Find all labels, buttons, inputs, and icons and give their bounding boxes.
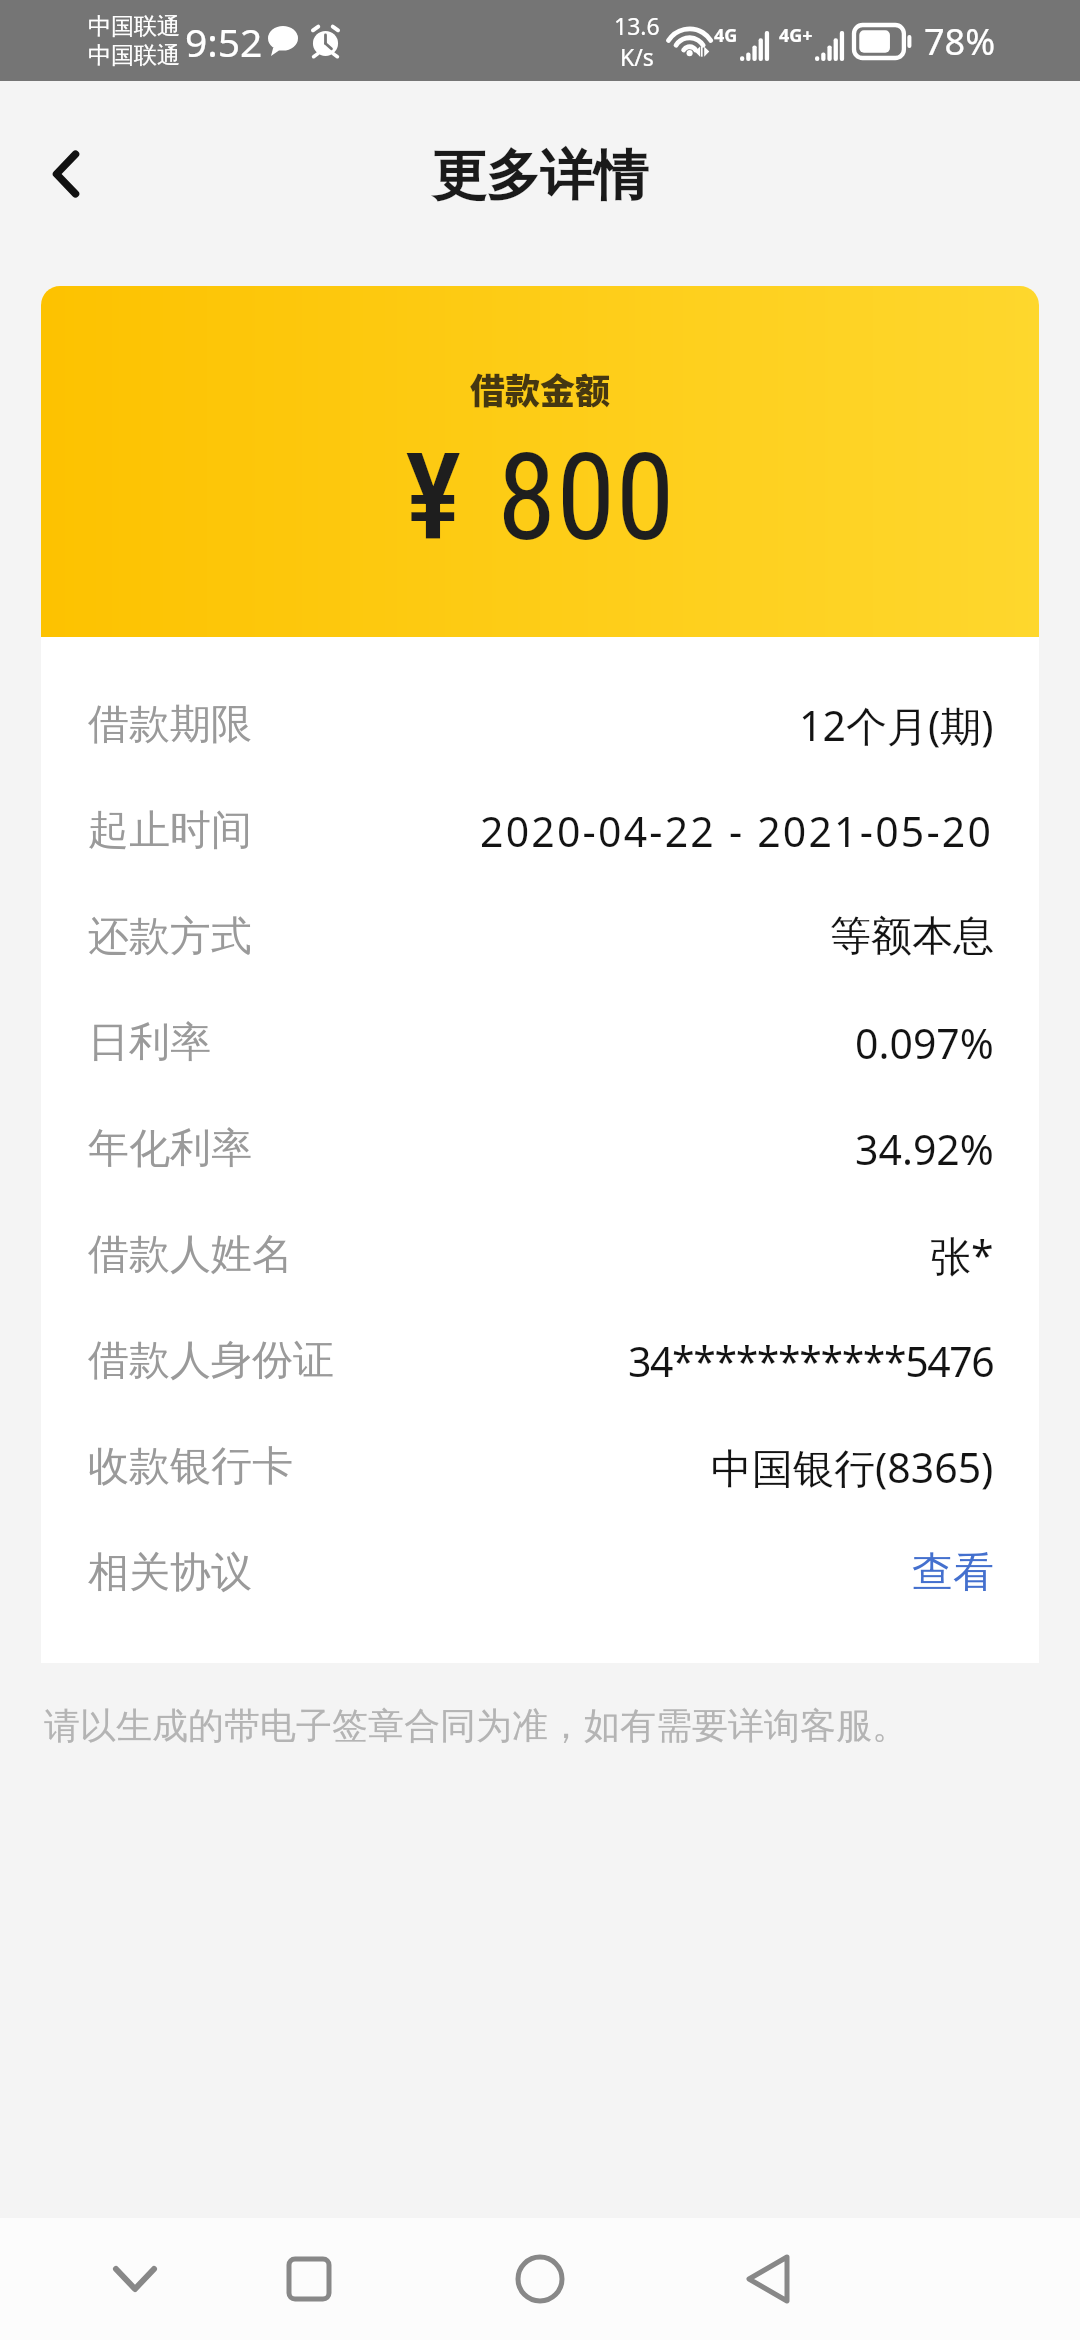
staticText: 4G <box>714 23 738 48</box>
staticText: 借款金额 <box>470 363 611 414</box>
staticText: 中国银行(8365) <box>711 1439 994 1495</box>
button[interactable]: Back <box>708 2219 828 2339</box>
staticText: 相关协议 <box>88 1547 252 1599</box>
staticText: 13.6 <box>614 10 660 41</box>
button[interactable]: Hide keyboard <box>75 2219 195 2339</box>
button[interactable]: Back <box>0 109 130 239</box>
staticText: ¥ <box>405 428 462 569</box>
staticText: 借款期限 <box>88 699 252 751</box>
staticText: 更多详情 <box>432 142 648 210</box>
staticText: 2020-04-22 - 2021-05-20 <box>480 803 994 859</box>
staticText: 4G+ <box>779 23 813 48</box>
staticText: 中国联通 <box>88 41 180 70</box>
staticText: 请以生成的带电子签章合同为准，如有需要详询客服。 <box>44 1703 908 1748</box>
staticText: 年化利率 <box>88 1123 252 1175</box>
staticText: 中国联通 <box>88 12 180 41</box>
staticText: 起止时间 <box>88 805 252 857</box>
staticText: 34***********5476 <box>628 1333 994 1389</box>
staticText: 12个月(期) <box>799 697 994 753</box>
staticText: 0.097% <box>855 1015 994 1071</box>
staticText: 34.92% <box>855 1121 994 1177</box>
staticText: K/s <box>620 41 654 72</box>
staticText: 收款银行卡 <box>88 1441 293 1493</box>
button[interactable]: Recents <box>249 2219 369 2339</box>
staticText: 张* <box>930 1227 994 1283</box>
staticText: 还款方式 <box>88 911 252 963</box>
staticText: 借款人姓名 <box>88 1229 293 1281</box>
button[interactable]: 相关协议 <box>41 1520 1039 1626</box>
staticText: 借款人身份证 <box>88 1335 334 1387</box>
staticText: 9:52 <box>185 15 263 68</box>
staticText: 日利率 <box>88 1017 211 1069</box>
staticText: 查看 <box>912 1547 994 1599</box>
staticText: 78% <box>924 17 996 66</box>
button[interactable]: Home <box>480 2219 600 2339</box>
staticText: 等额本息 <box>830 911 994 963</box>
staticText: 800 <box>497 428 675 569</box>
